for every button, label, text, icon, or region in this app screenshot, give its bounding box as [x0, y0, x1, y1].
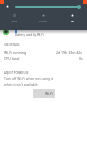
staticText: when it isn't available	[4, 82, 38, 87]
staticText: None	[11, 19, 18, 22]
button[interactable]: Priority	[29, 14, 58, 22]
staticText: Turn off Wi-Fi when not using it	[4, 76, 54, 81]
staticText: Wi-Fi running	[4, 50, 27, 55]
button[interactable]: None	[0, 14, 29, 22]
staticText: 2d 19h 33m 42s	[56, 50, 83, 55]
staticText: CPU total	[4, 56, 20, 61]
staticText: All	[71, 19, 74, 22]
staticText: ADJUST POWER USE	[4, 71, 29, 75]
other: Notification volume	[6, 5, 9, 8]
button[interactable]: CPU total	[4, 55, 83, 61]
staticText: Battery used by Wi-Fi	[15, 33, 44, 37]
staticText: Wi-Fi	[45, 91, 53, 96]
staticText: Priority	[39, 19, 48, 22]
button[interactable]: All	[58, 14, 87, 22]
staticText: 0s	[79, 56, 83, 61]
staticText: USE DETAILS	[4, 43, 20, 47]
button[interactable]: Wi-Fi	[33, 89, 55, 98]
button[interactable]: Wi-Fi running	[4, 49, 83, 55]
button[interactable]: Volume slider	[15, 6, 79, 8]
